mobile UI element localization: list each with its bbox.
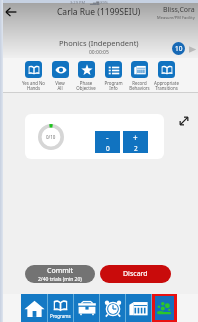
staticText: 2	[134, 144, 138, 153]
staticText: Phonics (Independent)	[59, 38, 139, 48]
staticText: Bliss,Cora	[163, 5, 195, 15]
button[interactable]: Phase Objective	[73, 61, 99, 92]
staticText: 2/40 trials (min 20)	[38, 276, 82, 283]
button[interactable]: Home	[21, 294, 47, 322]
staticText: Yes and No Hands	[22, 80, 45, 92]
button[interactable]: Play	[187, 44, 197, 54]
button[interactable]: Reports	[126, 294, 151, 322]
button[interactable]: Trials	[172, 42, 185, 55]
staticText: Carla Rue (1199SEIU)	[57, 6, 141, 18]
button[interactable]: Program Info	[100, 61, 126, 92]
staticText: Measure/PM Facility	[157, 15, 195, 20]
staticText: Commit	[47, 266, 74, 276]
staticText: Discard	[123, 269, 148, 279]
button[interactable]: Timer	[100, 294, 125, 322]
button[interactable]: Expand	[178, 115, 190, 127]
staticText: 3:29 PM	[70, 0, 86, 5]
staticText: View All	[55, 80, 65, 92]
button[interactable]: Programs	[48, 294, 73, 322]
button[interactable]: -	[95, 131, 120, 153]
button[interactable]: Appropriate Transitions	[153, 61, 179, 92]
button[interactable]: Back	[2, 3, 20, 21]
staticText: 0/10	[46, 134, 56, 140]
button[interactable]: View All	[47, 61, 73, 92]
staticText: Programs	[50, 313, 71, 319]
staticText: Appropriate Transitions	[154, 80, 179, 92]
staticText: +	[133, 132, 138, 143]
button[interactable]: Toolbox	[74, 294, 99, 322]
button[interactable]: Yes and No Hands	[20, 61, 46, 92]
button[interactable]: Discard	[100, 265, 171, 283]
staticText: Record Behaviors	[129, 80, 150, 92]
staticText: Program Info	[104, 80, 123, 92]
staticText: Phase Objective	[76, 80, 96, 92]
staticText: -	[106, 132, 109, 143]
staticText: 0	[106, 144, 110, 153]
button[interactable]: Sessions	[155, 296, 174, 320]
staticText: ▂▄▆ 89%	[90, 0, 109, 5]
button[interactable]: +	[123, 131, 148, 153]
button[interactable]: Commit	[25, 265, 95, 283]
staticText: 00:00:05	[89, 49, 109, 56]
staticText: 10	[175, 44, 183, 53]
button[interactable]: Record Behaviors	[126, 61, 152, 92]
